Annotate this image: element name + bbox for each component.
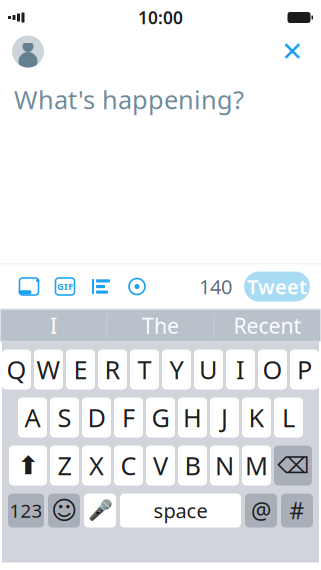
button[interactable]: space <box>120 493 241 527</box>
button[interactable]: V <box>146 445 175 485</box>
button[interactable]: T <box>130 349 159 389</box>
button[interactable]: 123 <box>8 493 44 527</box>
button[interactable]: D <box>82 397 111 437</box>
staticText: J <box>221 401 228 434</box>
button[interactable]: M <box>242 445 271 485</box>
staticText: R <box>104 353 120 386</box>
button[interactable]: O <box>258 349 287 389</box>
button[interactable]: G <box>146 397 175 437</box>
staticText: U <box>199 353 218 386</box>
button[interactable]: X <box>82 445 111 485</box>
staticText: ☺ <box>51 496 77 525</box>
staticText: H <box>183 401 202 434</box>
staticText: T <box>137 353 151 386</box>
staticText: Tweet <box>247 273 307 300</box>
button[interactable]: Tweet <box>244 271 310 301</box>
button[interactable]: # <box>281 493 313 527</box>
staticText: X <box>89 449 104 482</box>
staticText: Recent <box>233 311 301 340</box>
button[interactable]: E <box>66 349 95 389</box>
staticText: Z <box>57 449 71 482</box>
staticText: ⌫ <box>277 453 309 478</box>
button[interactable]: C <box>114 445 143 485</box>
staticText: 🎤 <box>87 499 112 522</box>
staticText: E <box>73 353 87 386</box>
button[interactable]: Add photo <box>11 268 47 304</box>
button[interactable]: U <box>194 349 223 389</box>
staticText: K <box>248 401 264 434</box>
button[interactable]: Add location <box>119 268 155 304</box>
button[interactable]: R <box>98 349 127 389</box>
button[interactable]: S <box>50 397 79 437</box>
button[interactable]: H <box>178 397 207 437</box>
staticText: W <box>36 353 60 386</box>
button[interactable]: W <box>34 349 63 389</box>
button[interactable]: I <box>226 349 255 389</box>
button[interactable]: N <box>210 445 239 485</box>
staticText: L <box>282 401 295 434</box>
staticText: G <box>151 401 169 434</box>
staticText: What's happening? <box>14 82 244 116</box>
button[interactable]: B <box>178 445 207 485</box>
staticText: F <box>122 401 135 434</box>
staticText: 123 <box>9 498 42 523</box>
staticText: ✕ <box>281 36 303 67</box>
staticText: GIF <box>57 280 73 293</box>
staticText: Q <box>6 353 26 386</box>
staticText: The <box>142 311 179 340</box>
staticText: D <box>87 401 105 434</box>
staticText: V <box>153 449 168 482</box>
button[interactable]: Close <box>275 34 309 68</box>
button[interactable]: Q <box>2 349 31 389</box>
button[interactable]: Add GIF <box>47 268 83 304</box>
staticText: 10:00 <box>138 6 183 29</box>
button[interactable]: P <box>290 349 319 389</box>
staticText: I <box>50 311 57 340</box>
button[interactable]: F <box>114 397 143 437</box>
button[interactable]: Emoji <box>48 493 80 527</box>
button[interactable]: Add poll <box>83 268 119 304</box>
staticText: N <box>215 449 234 482</box>
staticText: A <box>24 401 40 434</box>
staticText: S <box>57 401 71 434</box>
staticText: B <box>184 449 200 482</box>
button[interactable]: The <box>107 309 213 341</box>
staticText: M <box>245 449 268 482</box>
button[interactable]: Delete <box>274 445 312 485</box>
staticText: @ <box>251 495 271 525</box>
button[interactable]: Z <box>50 445 79 485</box>
button[interactable]: Dictation <box>84 493 116 527</box>
button[interactable]: J <box>210 397 239 437</box>
button[interactable]: Y <box>162 349 191 389</box>
staticText: # <box>289 495 304 525</box>
staticText: I <box>236 353 245 386</box>
button[interactable]: Shift <box>9 445 47 485</box>
staticText: P <box>297 353 312 386</box>
button[interactable]: A <box>18 397 47 437</box>
staticText: ⬆ <box>17 451 38 480</box>
button[interactable]: K <box>242 397 271 437</box>
staticText: space <box>153 497 207 524</box>
button[interactable]: Recent <box>214 309 320 341</box>
staticText: C <box>120 449 136 482</box>
staticText: Y <box>169 353 183 386</box>
staticText: 140 <box>199 273 232 300</box>
staticText: O <box>262 353 282 386</box>
button[interactable]: L <box>274 397 303 437</box>
button[interactable]: @ <box>245 493 277 527</box>
button[interactable]: I <box>0 309 106 341</box>
